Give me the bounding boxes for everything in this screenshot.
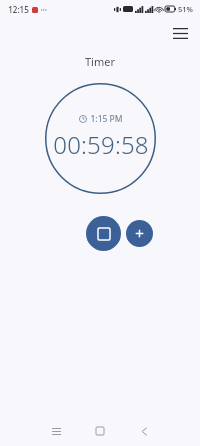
- staticText: 12:15: [8, 4, 29, 15]
- button[interactable]: Recent apps: [44, 419, 68, 443]
- button[interactable]: Back: [132, 419, 156, 443]
- button[interactable]: Add time: [126, 220, 153, 247]
- button[interactable]: Home: [88, 419, 112, 443]
- staticText: 51%: [178, 4, 193, 14]
- staticText: Timer: [85, 54, 115, 69]
- staticText: 00:59:58: [53, 128, 149, 161]
- staticText: 1:15 PM: [90, 113, 123, 125]
- button[interactable]: Menu: [166, 19, 194, 47]
- button[interactable]: Stop timer: [86, 216, 121, 251]
